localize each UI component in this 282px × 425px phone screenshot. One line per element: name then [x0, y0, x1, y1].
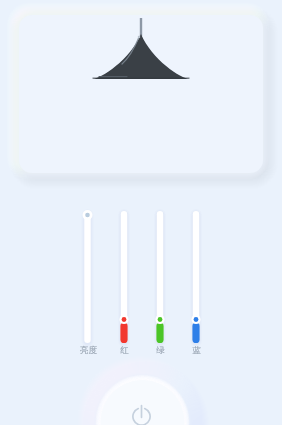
staticText: 蓝 [192, 345, 201, 356]
staticText: 红 [120, 345, 129, 356]
button[interactable]: Power [97, 378, 187, 425]
button[interactable]: Green [151, 208, 169, 346]
staticText: 亮度 [80, 345, 97, 356]
button[interactable]: Brightness [79, 208, 97, 346]
button[interactable]: Red [115, 208, 133, 346]
staticText: 绿 [156, 345, 165, 356]
button[interactable]: Blue [187, 208, 205, 346]
